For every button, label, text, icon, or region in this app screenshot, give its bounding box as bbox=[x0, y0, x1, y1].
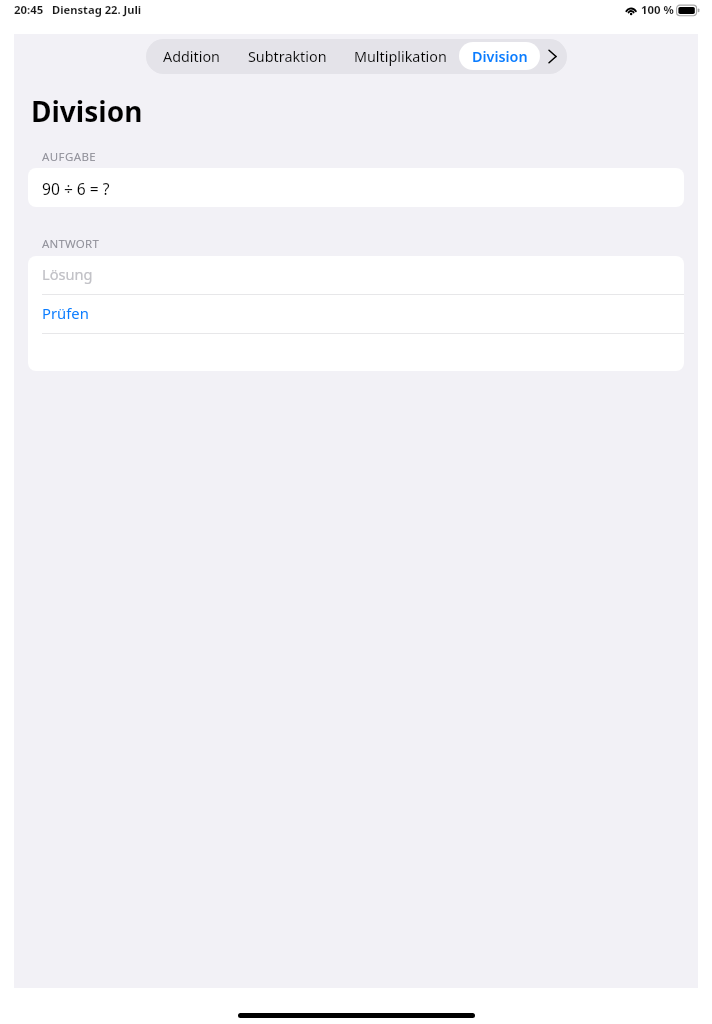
button[interactable]: Lösung bbox=[28, 256, 684, 294]
staticText: Division bbox=[31, 92, 143, 130]
staticText: Multiplikation bbox=[354, 47, 447, 67]
staticText: Dienstag 22. Juli bbox=[52, 2, 142, 17]
button[interactable]: Mehr anzeigen bbox=[539, 39, 567, 74]
staticText: Prüfen bbox=[42, 303, 89, 323]
staticText: Subtraktion bbox=[248, 47, 327, 67]
button[interactable]: Division bbox=[459, 39, 540, 74]
button[interactable]: Multiplikation bbox=[336, 39, 464, 74]
staticText: Division bbox=[472, 47, 528, 67]
button[interactable]: Addition bbox=[146, 39, 236, 74]
staticText: AUFGABE bbox=[42, 149, 97, 165]
staticText: ANTWORT bbox=[42, 236, 99, 252]
staticText: 90 ÷ 6 = ? bbox=[42, 178, 110, 199]
staticText: Addition bbox=[163, 47, 220, 67]
staticText: Lösung bbox=[42, 264, 93, 284]
staticText: 20:45 bbox=[14, 2, 44, 18]
staticText: 100 % bbox=[641, 2, 674, 18]
button[interactable]: 90 ÷ 6 = ? bbox=[28, 168, 684, 207]
button[interactable]: Prüfen bbox=[28, 295, 684, 333]
button[interactable]: Subtraktion bbox=[238, 39, 336, 74]
